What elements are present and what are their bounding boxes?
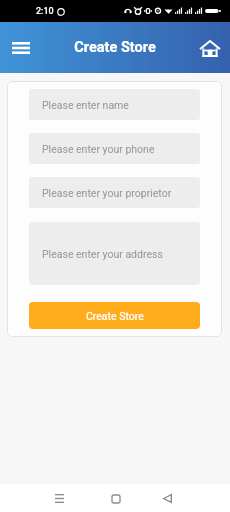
button[interactable]: Create Store (29, 302, 200, 329)
button[interactable]: Back (154, 485, 181, 512)
button[interactable]: Please enter your address (29, 222, 200, 285)
staticText: Create Store (74, 39, 156, 56)
staticText: Create Store (86, 310, 144, 322)
staticText: Please enter your phone (42, 143, 155, 155)
button[interactable]: Home (195, 33, 225, 63)
staticText: Please enter your address (42, 248, 163, 260)
staticText: Please enter name (42, 99, 129, 111)
button[interactable]: Open navigation menu (6, 33, 36, 63)
staticText: Please enter your proprietor (42, 187, 172, 199)
button[interactable]: Recent apps (46, 485, 73, 512)
button[interactable]: Please enter name (29, 89, 200, 120)
button[interactable]: Home (102, 485, 129, 512)
button[interactable]: Please enter your phone (29, 133, 200, 164)
staticText: 2:10 (36, 6, 54, 17)
button[interactable]: Please enter your proprietor (29, 177, 200, 208)
